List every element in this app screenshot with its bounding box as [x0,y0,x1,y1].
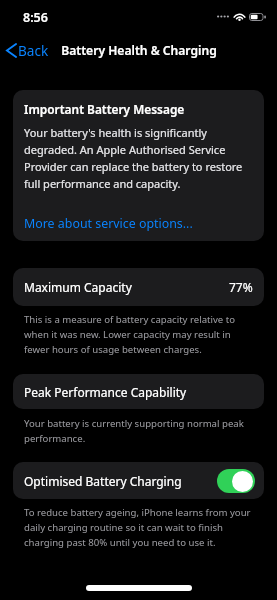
staticText: This is a measure of battery capacity re… [24,313,254,355]
staticText: Optimised Battery Charging [24,473,182,489]
staticText: Peak Performance Capability [24,384,187,400]
staticText: Maximum Capacity [24,279,132,295]
staticText: Important Battery Message [24,101,185,117]
button[interactable]: Optimised Battery Charging [217,469,255,493]
button[interactable]: Back [1,38,57,63]
button[interactable]: Maximum Capacity [13,268,264,306]
staticText: Back [18,41,49,60]
staticText: More about service options... [24,215,193,232]
staticText: 8:56 [23,9,48,26]
staticText: 77% [229,279,253,295]
staticText: Battery Health & Charging [61,42,217,58]
button[interactable]: Peak Performance Capability [13,374,264,409]
staticText: To reduce battery ageing, iPhone learns … [24,506,254,548]
button[interactable]: More about service options... [21,213,196,234]
staticText: Your battery is currently supporting nor… [24,417,254,444]
staticText: Your battery's health is significantly d… [24,125,246,191]
